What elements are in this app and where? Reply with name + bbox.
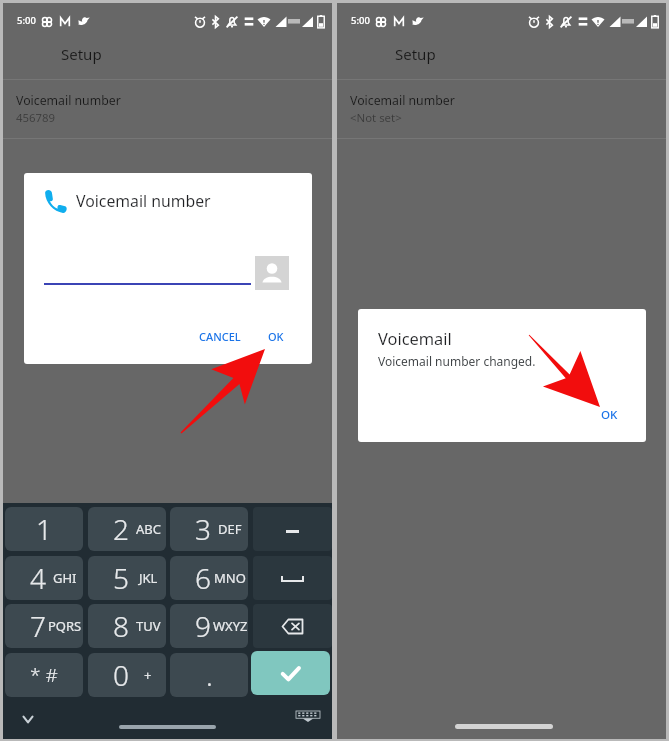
staticText: ABC — [136, 520, 161, 538]
staticText: MNO — [214, 569, 246, 587]
staticText: Voicemail — [378, 327, 452, 349]
staticText: Voicemail number — [350, 92, 455, 109]
button[interactable]: OK — [592, 402, 627, 428]
staticText: 9 — [195, 607, 211, 645]
staticText: * # — [30, 662, 58, 688]
button[interactable]: 9 — [170, 604, 248, 648]
staticText: Setup — [395, 44, 436, 64]
staticText: 2 — [113, 510, 129, 548]
button[interactable]: 6 — [170, 556, 248, 600]
staticText: Voicemail number — [16, 92, 121, 109]
staticText: . — [206, 656, 213, 694]
button[interactable]: 4 — [5, 556, 83, 600]
staticText: 1 — [36, 510, 52, 548]
button[interactable]: Backspace — [253, 604, 332, 648]
button[interactable]: Switch keyboard — [291, 703, 325, 729]
staticText: 456789 — [16, 110, 56, 126]
staticText: GHI — [53, 569, 77, 587]
staticText: OK — [268, 329, 284, 344]
staticText: OK — [601, 407, 618, 423]
staticText: 0 — [113, 656, 129, 694]
staticText: 8 — [113, 607, 129, 645]
staticText: WXYZ — [213, 617, 248, 635]
button[interactable]: 7 — [5, 604, 83, 648]
staticText: Voicemail number changed. — [378, 353, 536, 369]
staticText: TUV — [136, 617, 161, 635]
button[interactable]: Hide keyboard — [18, 709, 38, 729]
button[interactable]: 8 — [88, 604, 166, 648]
staticText: Setup — [61, 44, 102, 64]
staticText: JKL — [139, 569, 158, 587]
staticText: 7 — [30, 607, 46, 645]
button[interactable]: Enter — [251, 651, 330, 695]
button[interactable]: Pick contact — [255, 256, 289, 290]
button[interactable]: * # — [5, 653, 83, 697]
button[interactable]: . — [170, 653, 248, 697]
staticText: <Not set> — [350, 110, 402, 126]
button[interactable]: 3 — [170, 507, 248, 551]
button[interactable]: CANCEL — [190, 324, 250, 349]
staticText: CANCEL — [199, 329, 241, 344]
staticText: DEF — [218, 520, 242, 538]
button[interactable]: 2 — [88, 507, 166, 551]
staticText: Voicemail number — [76, 190, 211, 212]
button[interactable]: Space — [253, 556, 332, 600]
staticText: 5 — [113, 559, 129, 597]
button[interactable]: Voicemail number — [3, 80, 332, 138]
button[interactable]: OK — [259, 324, 293, 349]
button[interactable]: 1 — [5, 507, 83, 551]
button[interactable]: Voicemail number — [337, 80, 666, 138]
staticText: 5:00 — [17, 14, 36, 27]
staticText: 3 — [195, 510, 211, 548]
button[interactable]: 5 — [88, 556, 166, 600]
button[interactable]: 0 — [88, 653, 166, 697]
staticText: 5:00 — [351, 14, 370, 27]
staticText: 4 — [30, 559, 46, 597]
staticText: PQRS — [48, 617, 82, 635]
staticText: + — [144, 666, 152, 684]
staticText: 6 — [195, 559, 211, 597]
button[interactable]: Dash — [253, 507, 332, 551]
